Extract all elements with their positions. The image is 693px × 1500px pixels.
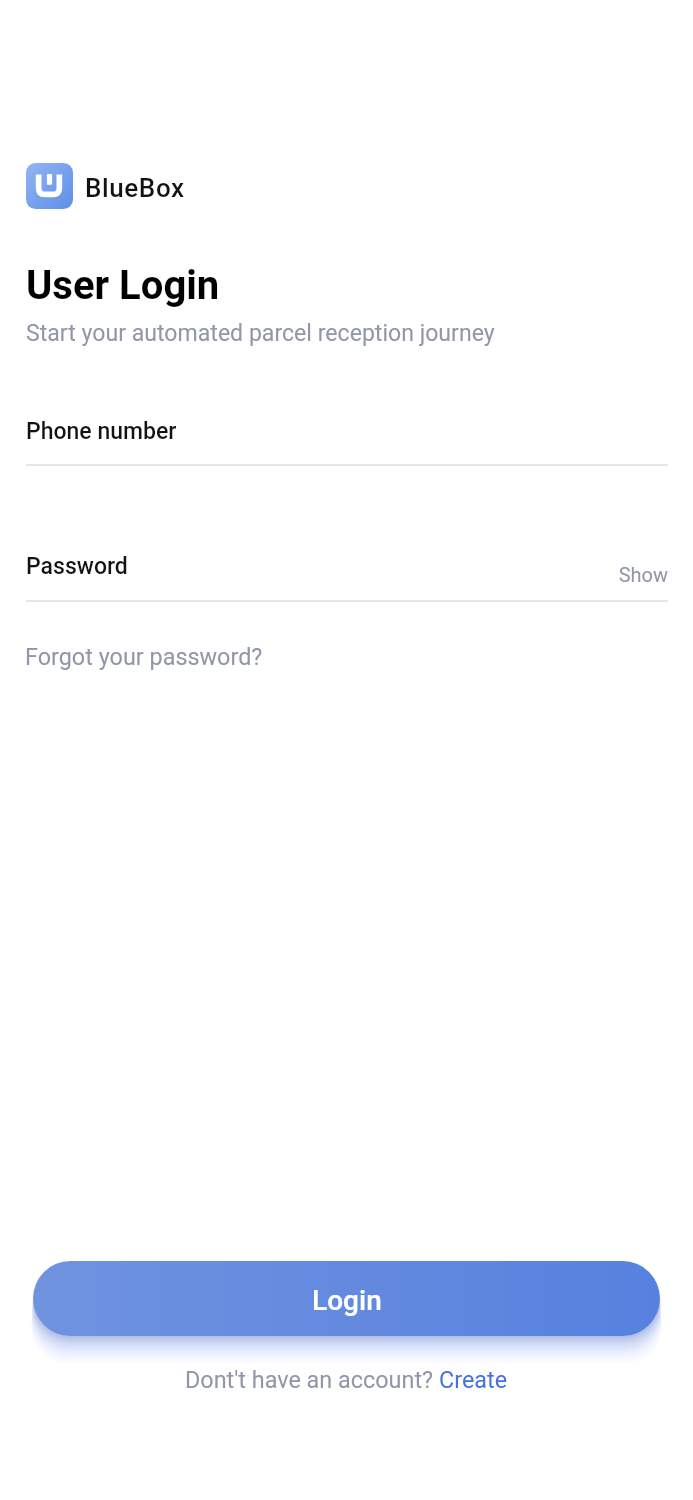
staticText: Dont't have an account?: [185, 1366, 439, 1393]
staticText: Forgot your password?: [25, 643, 263, 670]
staticText: User Login: [26, 262, 220, 309]
staticText: Password: [26, 553, 128, 580]
button[interactable]: Password: [26, 539, 668, 602]
button[interactable]: Show: [560, 558, 668, 590]
staticText: Start your automated parcel reception jo…: [26, 320, 495, 347]
staticText: BlueBox: [85, 173, 185, 203]
staticText: Show: [618, 563, 668, 586]
other: BlueBox logo: [26, 163, 73, 209]
staticText: Login: [312, 1284, 382, 1317]
button[interactable]: Login: [33, 1261, 660, 1336]
button[interactable]: Create: [439, 1366, 508, 1393]
button[interactable]: BlueBox logo: [26, 163, 185, 209]
staticText: Phone number: [26, 418, 177, 445]
staticText: Create: [439, 1366, 508, 1393]
button[interactable]: Forgot your password?: [25, 643, 263, 670]
button[interactable]: Phone number: [26, 404, 668, 466]
